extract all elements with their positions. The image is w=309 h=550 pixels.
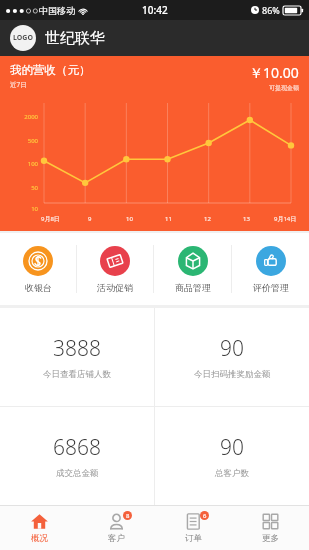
- staticText: 订单: [185, 533, 202, 544]
- button[interactable]: 更多: [232, 506, 309, 550]
- staticText: 10:42: [142, 3, 168, 17]
- staticText: 6868: [53, 433, 101, 462]
- staticText: 9: [88, 215, 92, 223]
- staticText: 商品管理: [175, 282, 211, 293]
- staticText: 收银台: [25, 282, 52, 293]
- button[interactable]: 6: [155, 506, 232, 550]
- staticText: 9月8日: [41, 215, 60, 223]
- button[interactable]: 90: [155, 407, 309, 505]
- staticText: 2000: [6, 113, 38, 121]
- staticText: 500: [6, 137, 38, 145]
- staticText: 9月14日: [274, 215, 297, 223]
- staticText: 活动促销: [97, 282, 133, 293]
- staticText: 12: [204, 215, 211, 223]
- staticText: 今日查看店铺人数: [43, 369, 111, 380]
- staticText: 100: [6, 160, 38, 168]
- button[interactable]: 活动促销: [77, 233, 153, 305]
- button[interactable]: 商品管理: [154, 233, 231, 305]
- staticText: 概况: [31, 533, 48, 544]
- staticText: 我的营收（元）: [10, 63, 91, 77]
- button[interactable]: 8: [78, 506, 155, 550]
- button[interactable]: 概况: [0, 506, 78, 550]
- staticText: ￥10.00: [249, 63, 299, 82]
- button[interactable]: Logo: [10, 25, 36, 51]
- staticText: 10: [126, 215, 133, 223]
- button[interactable]: 3888: [0, 308, 154, 406]
- staticText: 近7日: [10, 80, 27, 89]
- button[interactable]: 90: [155, 308, 309, 406]
- staticText: 成交总金额: [56, 468, 99, 479]
- staticText: 86%: [262, 4, 280, 16]
- staticText: 客户: [108, 533, 125, 544]
- staticText: 可提现金额: [269, 84, 299, 92]
- staticText: 8: [126, 512, 130, 520]
- staticText: 3888: [53, 334, 101, 363]
- staticText: 更多: [262, 533, 279, 544]
- staticText: 90: [220, 433, 244, 462]
- staticText: 评价管理: [253, 282, 289, 293]
- staticText: 中国移动: [39, 5, 75, 16]
- staticText: 13: [243, 215, 250, 223]
- staticText: 10: [6, 205, 38, 213]
- staticText: 世纪联华: [45, 29, 105, 48]
- button[interactable]: 评价管理: [232, 233, 309, 305]
- button[interactable]: 收银台: [0, 233, 76, 305]
- button[interactable]: 6868: [0, 407, 154, 505]
- staticText: 总客户数: [215, 468, 249, 479]
- staticText: LOGO: [13, 33, 33, 43]
- staticText: 90: [220, 334, 244, 363]
- staticText: 11: [165, 215, 172, 223]
- staticText: 50: [6, 184, 38, 192]
- staticText: 6: [203, 512, 207, 520]
- staticText: 今日扫码推奖励金额: [194, 369, 271, 380]
